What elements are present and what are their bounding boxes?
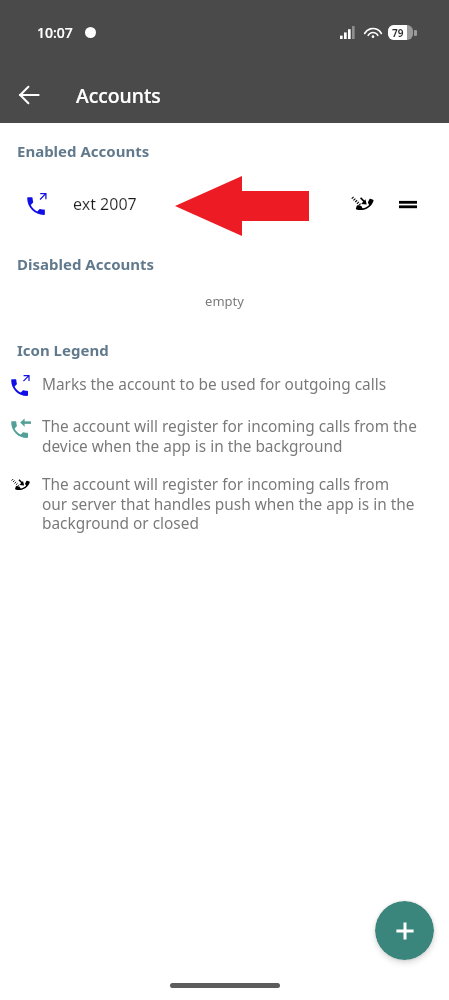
staticText: 10:07 — [37, 23, 73, 42]
staticText: The account will register for incoming c… — [42, 416, 417, 457]
staticText: Disabled Accounts — [17, 254, 155, 274]
staticText: empty — [0, 292, 449, 310]
staticText: Enabled Accounts — [17, 141, 150, 161]
button[interactable]: Add account — [375, 901, 434, 960]
staticText: 79 — [392, 26, 404, 40]
staticText: Accounts — [76, 82, 161, 108]
button[interactable]: ext 2007 — [0, 182, 449, 226]
staticText: Icon Legend — [17, 340, 109, 360]
staticText: ext 2007 — [73, 193, 137, 215]
button[interactable]: Back — [6, 72, 52, 118]
staticText: The account will register for incoming c… — [42, 474, 417, 534]
staticText: Marks the account to be used for outgoin… — [42, 374, 387, 395]
